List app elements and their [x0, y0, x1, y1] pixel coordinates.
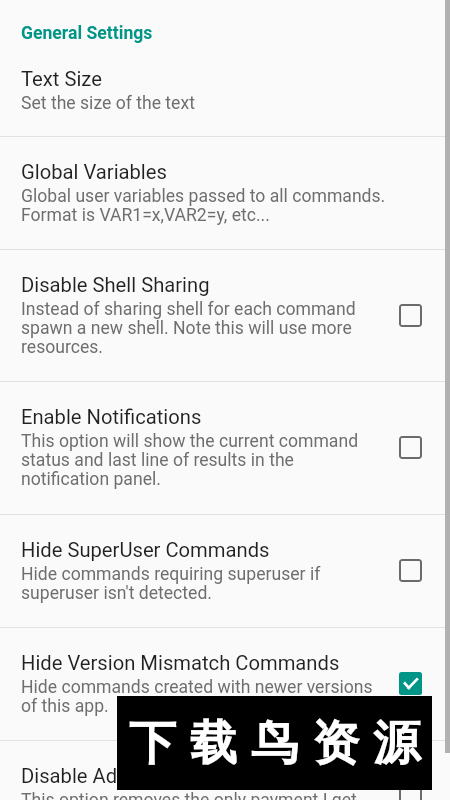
- staticText: Global user variables passed to all comm…: [21, 186, 386, 225]
- staticText: This option removes the only payment I g…: [21, 790, 357, 800]
- button[interactable]: Hide Version Mismatch Commands: [0, 628, 450, 740]
- staticText: Hide commands created with newer version…: [21, 677, 373, 716]
- button[interactable]: Toggle Hide Version Mismatch Commands: [388, 661, 432, 705]
- staticText: This option will show the current comman…: [21, 431, 359, 489]
- button[interactable]: Enable Notifications: [0, 382, 450, 514]
- button[interactable]: Toggle Hide SuperUser Commands: [388, 548, 432, 592]
- button[interactable]: Disable Shell Sharing: [0, 250, 450, 381]
- button[interactable]: Hide SuperUser Commands: [0, 515, 450, 627]
- staticText: Instead of sharing shell for each comman…: [21, 299, 356, 357]
- staticText: Hide commands requiring superuser if sup…: [21, 564, 321, 603]
- staticText: Set the size of the text: [21, 93, 195, 114]
- button[interactable]: Disable Ads: [0, 741, 450, 800]
- staticText: Enable Notifications: [21, 405, 202, 429]
- button[interactable]: Text Size: [0, 67, 450, 136]
- button[interactable]: Global Variables: [0, 137, 450, 249]
- staticText: 下载鸟资源: [122, 714, 427, 773]
- button[interactable]: Toggle Disable Shell Sharing: [388, 293, 432, 337]
- staticText: Hide Version Mismatch Commands: [21, 651, 340, 675]
- staticText: Text Size: [21, 67, 102, 91]
- staticText: General Settings: [21, 23, 153, 44]
- staticText: Disable Ads: [21, 764, 128, 788]
- button[interactable]: Toggle Disable Ads: [388, 774, 432, 800]
- staticText: Global Variables: [21, 160, 167, 184]
- staticText: Hide SuperUser Commands: [21, 538, 270, 562]
- staticText: Disable Shell Sharing: [21, 273, 210, 297]
- button[interactable]: Toggle Enable Notifications: [388, 425, 432, 469]
